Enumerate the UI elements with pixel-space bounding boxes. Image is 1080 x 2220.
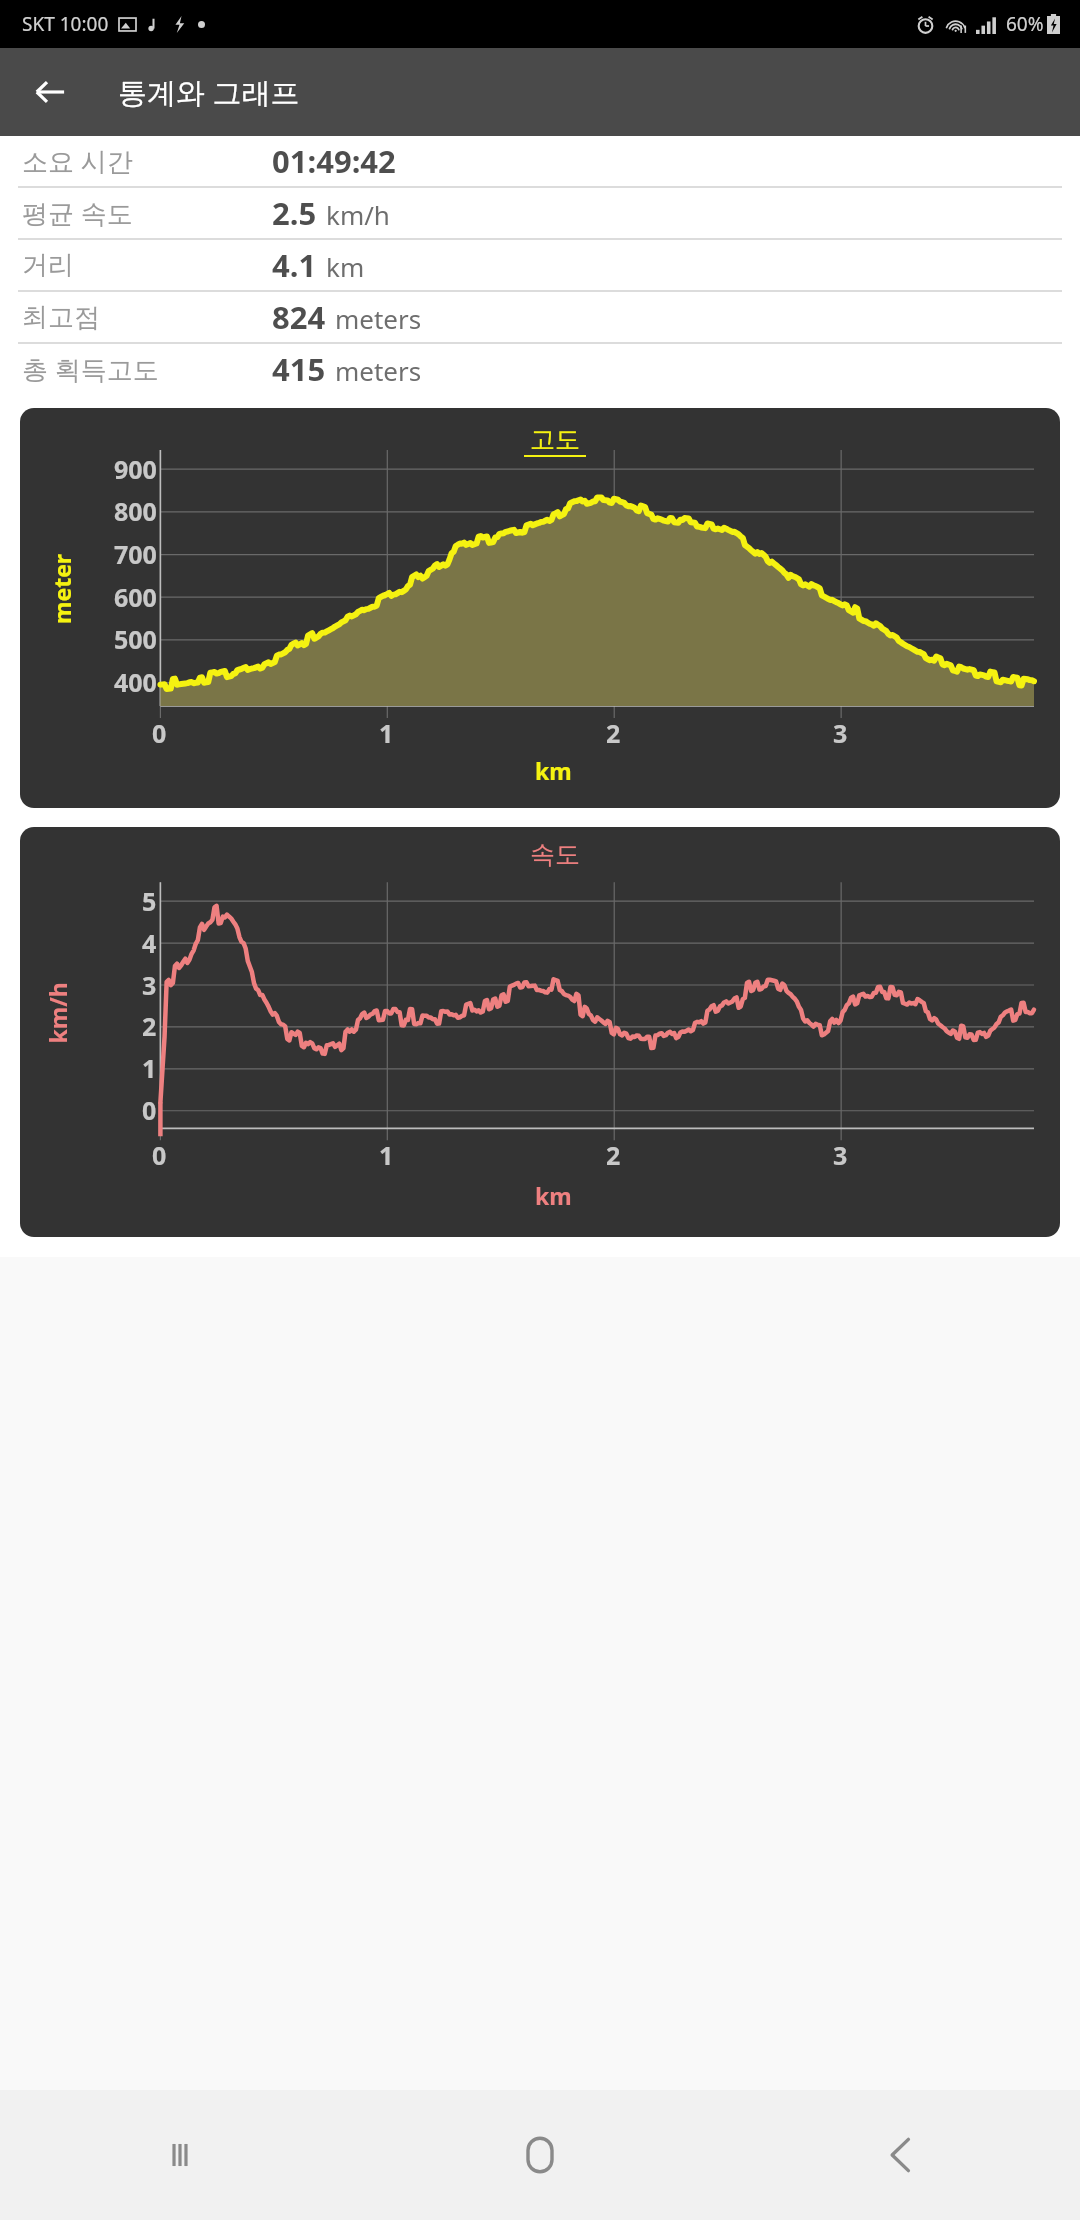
staticText: meters <box>335 301 422 336</box>
staticText: 4.1 <box>272 244 317 286</box>
staticText: 거리 <box>22 249 272 282</box>
staticText: 0 <box>142 1093 157 1127</box>
staticText: 2 <box>606 1138 621 1172</box>
staticText: km/h <box>326 197 390 232</box>
staticText: 1 <box>142 1051 157 1085</box>
staticText: km <box>535 1180 572 1211</box>
staticText: 600 <box>114 580 157 614</box>
button[interactable]: 속도 <box>20 827 1060 1237</box>
staticText: 824 <box>272 296 326 338</box>
staticText: 소요 시간 <box>22 143 272 179</box>
staticText: 2 <box>142 1009 157 1043</box>
staticText: 1 <box>379 1138 394 1172</box>
staticText: 3 <box>142 968 157 1002</box>
button[interactable]: 고도 <box>20 408 1060 808</box>
staticText: km <box>326 249 365 284</box>
staticText: 5 <box>142 884 157 918</box>
staticText: 최고점 <box>22 301 272 334</box>
staticText: 통계와 그래프 <box>118 72 300 112</box>
staticText: 60% <box>1006 11 1044 37</box>
button[interactable]: 소요 시간 <box>0 136 1080 186</box>
staticText: km/h <box>41 981 72 1043</box>
button[interactable]: Back <box>20 62 80 122</box>
staticText: 0 <box>152 1138 167 1172</box>
button[interactable]: Recent apps <box>0 2090 360 2220</box>
staticText: 3 <box>833 716 848 750</box>
button[interactable]: Back <box>720 2090 1080 2220</box>
staticText: 2 <box>606 716 621 750</box>
button[interactable]: 총 획득고도 <box>0 344 1080 394</box>
staticText: 415 <box>272 348 326 390</box>
staticText: 400 <box>114 665 157 699</box>
staticText: 1 <box>379 716 394 750</box>
staticText: 평균 속도 <box>22 195 272 231</box>
staticText: 900 <box>114 452 157 486</box>
staticText: meter <box>46 553 77 624</box>
button[interactable]: 거리 <box>0 240 1080 290</box>
staticText: 3 <box>833 1138 848 1172</box>
button[interactable]: Home <box>360 2090 720 2220</box>
staticText: 800 <box>114 494 157 528</box>
staticText: 700 <box>114 537 157 571</box>
staticText: 고도 <box>530 424 580 455</box>
staticText: km <box>535 755 572 786</box>
staticText: SKT 10:00 <box>22 11 109 37</box>
staticText: 속도 <box>530 839 580 870</box>
staticText: 01:49:42 <box>272 140 396 182</box>
staticText: 0 <box>152 716 167 750</box>
staticText: meters <box>335 353 422 388</box>
button[interactable]: 최고점 <box>0 292 1080 342</box>
staticText: 500 <box>114 622 157 656</box>
staticText: 총 획득고도 <box>22 351 272 387</box>
staticText: 4 <box>142 926 157 960</box>
button[interactable]: 평균 속도 <box>0 188 1080 238</box>
staticText: 2.5 <box>272 192 317 234</box>
